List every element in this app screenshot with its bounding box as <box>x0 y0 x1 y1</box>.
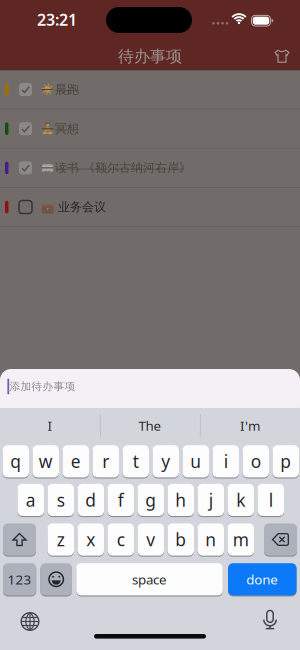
button[interactable]: g <box>137 483 164 517</box>
button[interactable]: z <box>47 522 74 557</box>
staticText: t <box>133 450 139 473</box>
staticText: p <box>280 450 291 473</box>
button[interactable]: n <box>197 522 224 557</box>
button[interactable]: y <box>152 444 179 478</box>
button[interactable]: d <box>77 483 104 517</box>
button[interactable]: e <box>62 444 89 478</box>
button[interactable]: m <box>227 522 254 557</box>
staticText: space <box>132 570 167 588</box>
staticText: c <box>117 528 125 551</box>
button[interactable]: b <box>167 522 194 557</box>
staticText: u <box>190 450 201 473</box>
button[interactable]: w <box>32 444 59 478</box>
button[interactable]: j <box>197 483 224 517</box>
button[interactable]: I'm <box>202 410 298 440</box>
staticText: k <box>236 488 245 511</box>
button[interactable]: 📖 <box>0 148 300 187</box>
staticText: The <box>138 417 161 434</box>
staticText: n <box>205 528 216 551</box>
button[interactable]: h <box>167 483 194 517</box>
staticText: a <box>26 488 36 511</box>
staticText: d <box>85 488 96 511</box>
button[interactable]: I <box>2 410 98 440</box>
button[interactable]: i <box>212 444 239 478</box>
staticText: 待办事项 <box>118 47 182 66</box>
staticText: r <box>102 450 109 473</box>
staticText: 业务会议 <box>58 200 106 214</box>
button[interactable]: Emoji <box>40 562 72 596</box>
staticText: 读书 《额尔古纳河右岸》 <box>55 160 191 175</box>
staticText: I'm <box>240 417 260 434</box>
button[interactable]: Dictation <box>259 609 281 630</box>
button[interactable]: q <box>2 444 29 478</box>
button[interactable]: 🧘 <box>0 109 300 148</box>
button[interactable]: Numbers <box>3 562 36 596</box>
button[interactable]: r <box>92 444 119 478</box>
button[interactable]: 添加待办事项 <box>0 369 300 418</box>
staticText: 🧘 <box>41 123 54 135</box>
staticText: I <box>47 417 52 434</box>
button[interactable]: k <box>227 483 254 517</box>
staticText: g <box>145 488 156 511</box>
button[interactable]: c <box>107 522 134 557</box>
button[interactable]: o <box>242 444 269 478</box>
staticText: 冥想 <box>55 121 79 136</box>
button[interactable]: The <box>102 410 198 440</box>
button[interactable]: l <box>257 483 284 517</box>
button[interactable]: 外观 <box>271 45 293 67</box>
button[interactable]: u <box>182 444 209 478</box>
button[interactable]: space <box>76 562 223 596</box>
staticText: f <box>118 488 124 511</box>
staticText: 📖 <box>41 162 54 174</box>
staticText: ☀️ <box>41 83 54 96</box>
staticText: 23:21 <box>37 9 77 30</box>
staticText: 💼 <box>41 201 54 213</box>
button[interactable]: f <box>107 483 134 517</box>
staticText: 123 <box>8 570 32 588</box>
button[interactable]: t <box>122 444 149 478</box>
button[interactable]: p <box>272 444 299 478</box>
staticText: e <box>71 450 81 473</box>
button[interactable]: Shift <box>3 522 36 557</box>
staticText: done <box>246 570 278 588</box>
staticText: v <box>146 528 155 551</box>
staticText: i <box>224 450 228 473</box>
button[interactable]: Next keyboard <box>19 610 41 632</box>
button[interactable]: ☀️ <box>0 70 300 109</box>
staticText: o <box>251 450 261 473</box>
staticText: 晨跑 <box>55 82 79 97</box>
staticText: b <box>175 528 186 551</box>
staticText: l <box>269 488 273 511</box>
button[interactable]: 💼 <box>0 187 300 227</box>
staticText: m <box>233 528 249 551</box>
button[interactable]: done <box>228 562 297 596</box>
staticText: x <box>86 528 95 551</box>
button[interactable]: x <box>77 522 104 557</box>
staticText: w <box>39 450 53 473</box>
staticText: q <box>10 450 21 473</box>
staticText: y <box>161 450 170 473</box>
staticText: h <box>175 488 186 511</box>
button[interactable]: v <box>137 522 164 557</box>
button[interactable]: a <box>17 483 44 517</box>
staticText: 添加待办事项 <box>9 380 75 393</box>
button[interactable]: Delete <box>264 522 297 557</box>
staticText: z <box>57 528 65 551</box>
staticText: s <box>57 488 65 511</box>
staticText: j <box>209 488 213 511</box>
button[interactable]: s <box>47 483 74 517</box>
